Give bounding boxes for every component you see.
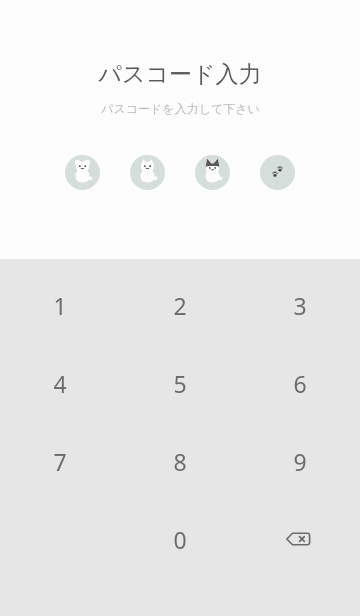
button[interactable]: 6 bbox=[240, 344, 360, 422]
button[interactable]: 3 bbox=[240, 266, 360, 344]
staticText: 0 bbox=[173, 524, 187, 555]
staticText: 9 bbox=[293, 446, 307, 477]
staticText: 1 bbox=[53, 290, 67, 321]
staticText: パスコードを入力して下さい bbox=[101, 101, 260, 116]
button[interactable]: Passcode icon 4 bbox=[260, 155, 295, 190]
button[interactable]: 4 bbox=[0, 344, 120, 422]
button[interactable]: 7 bbox=[0, 422, 120, 500]
button[interactable]: Passcode icon 1 bbox=[65, 155, 100, 190]
button[interactable]: Passcode icon 2 bbox=[130, 155, 165, 190]
staticText: 8 bbox=[173, 446, 187, 477]
staticText: 6 bbox=[293, 368, 307, 399]
button[interactable]: 2 bbox=[120, 266, 240, 344]
button[interactable]: Passcode icon 3 bbox=[195, 155, 230, 190]
button[interactable]: 5 bbox=[120, 344, 240, 422]
staticText: パスコード入力 bbox=[98, 60, 262, 89]
button[interactable]: 1 bbox=[0, 266, 120, 344]
staticText: 2 bbox=[173, 290, 187, 321]
button[interactable]: 8 bbox=[120, 422, 240, 500]
button[interactable]: Backspace bbox=[240, 500, 360, 578]
button[interactable]: 9 bbox=[240, 422, 360, 500]
staticText: 3 bbox=[293, 290, 307, 321]
staticText: 5 bbox=[173, 368, 187, 399]
button[interactable]: 0 bbox=[120, 500, 240, 578]
staticText: 4 bbox=[53, 368, 67, 399]
staticText: 7 bbox=[53, 446, 67, 477]
